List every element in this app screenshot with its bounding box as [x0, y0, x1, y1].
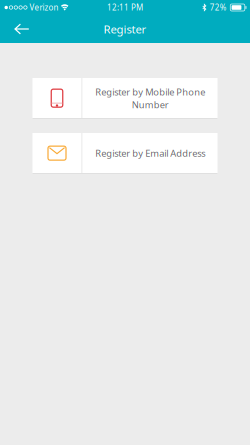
staticText: Register: [103, 21, 146, 37]
staticText: 72%: [210, 2, 227, 13]
staticText: 12:11 PM: [107, 2, 143, 13]
button[interactable]: Register by Mobile Phone Number: [32, 78, 217, 119]
button[interactable]: Register by Email Address: [32, 133, 217, 174]
staticText: Register by Email Address: [95, 147, 205, 159]
staticText: Verizon: [29, 2, 58, 13]
staticText: Register by Mobile Phone Number: [95, 85, 205, 111]
button[interactable]: Back: [0, 17, 41, 41]
